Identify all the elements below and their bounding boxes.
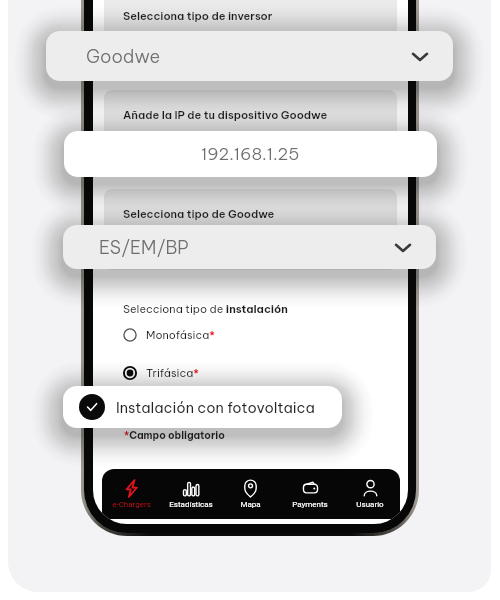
button[interactable]: ES/EM/BP xyxy=(63,225,436,269)
staticText: Goodwe xyxy=(86,45,409,68)
staticText: Monofásica* xyxy=(146,328,215,342)
staticText: Selecciona tipo de Goodwe xyxy=(123,207,275,221)
button[interactable]: Payments xyxy=(280,469,340,519)
button[interactable]: Goodwe xyxy=(46,31,453,81)
staticText: Usuario xyxy=(356,500,384,509)
button[interactable]: Selecciona tipo de inversor xyxy=(104,0,397,81)
staticText: Selecciona tipo de inversor xyxy=(123,9,273,23)
staticText: Instalación con fotovoltaica xyxy=(116,398,315,416)
button[interactable]: Selecciona tipo de instalación xyxy=(104,288,397,455)
staticText: Añade la IP de tu dispositivo Goodwe xyxy=(123,108,328,122)
staticText: 192.168.1.25 xyxy=(201,143,300,165)
button[interactable]: Monofásica* xyxy=(123,328,215,342)
staticText: Payments xyxy=(292,500,328,509)
staticText: Trifásica* xyxy=(146,366,199,380)
other: Expand xyxy=(409,45,431,67)
staticText: e-Chargers xyxy=(112,500,151,509)
other: Expand xyxy=(392,236,414,258)
staticText: ES/EM/BP xyxy=(99,236,392,259)
staticText: *Campo obligatorio xyxy=(124,429,225,442)
button[interactable]: Estadísticas xyxy=(161,469,220,519)
button[interactable]: 192.168.1.25 xyxy=(64,131,437,177)
button[interactable]: Selecciona tipo de Goodwe xyxy=(104,189,397,270)
staticText: Mapa xyxy=(240,500,261,509)
button[interactable]: Usuario xyxy=(340,469,400,519)
button[interactable]: Trifásica* xyxy=(123,366,199,380)
button[interactable]: Añade la IP de tu dispositivo Goodwe xyxy=(104,90,397,177)
button[interactable]: Mapa xyxy=(220,469,280,519)
staticText: Selecciona tipo de instalación xyxy=(123,302,288,316)
button[interactable]: Instalación con fotovoltaica xyxy=(63,386,342,428)
staticText: Estadísticas xyxy=(169,500,213,509)
button[interactable]: e-Chargers xyxy=(102,469,161,519)
